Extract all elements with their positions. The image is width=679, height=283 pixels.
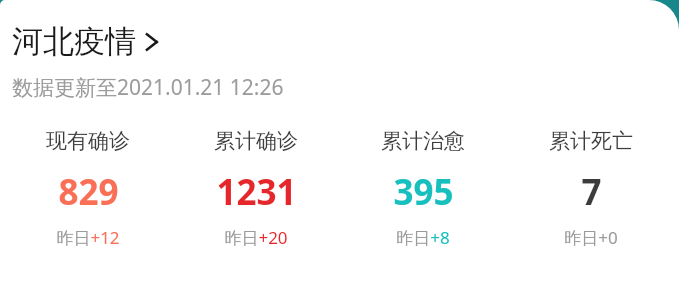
- staticText: 数据更新至2021.01.21 12:26: [12, 73, 284, 102]
- button[interactable]: 现有确诊: [8, 128, 168, 249]
- staticText: 829: [58, 168, 119, 216]
- staticText: 现有确诊: [46, 128, 130, 154]
- button[interactable]: 累计治愈: [343, 128, 503, 249]
- staticText: 累计治愈: [381, 128, 465, 154]
- button[interactable]: 累计确诊: [176, 128, 336, 249]
- staticText: 昨日+12: [56, 226, 120, 249]
- staticText: 河北疫情: [12, 22, 136, 61]
- staticText: 昨日+8: [396, 226, 450, 249]
- staticText: 累计死亡: [549, 128, 633, 154]
- button[interactable]: 累计死亡: [511, 128, 671, 249]
- staticText: 1231: [216, 168, 297, 216]
- button[interactable]: 河北疫情: [12, 22, 160, 61]
- staticText: 昨日+20: [224, 226, 288, 249]
- staticText: 昨日+0: [564, 226, 618, 249]
- staticText: 395: [393, 168, 454, 216]
- staticText: 7: [581, 168, 602, 216]
- other: Open Hebei epidemic details: [144, 29, 160, 55]
- staticText: 累计确诊: [214, 128, 298, 154]
